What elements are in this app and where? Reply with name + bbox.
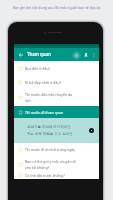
button[interactable]: Back [17,51,25,59]
staticText: 관광지를 추천해 주시겠어요 [27,124,71,129]
staticText: cho tôi không? [25,165,50,170]
staticText: Tôi muốn đi tham quan [25,110,64,115]
button[interactable]: Record [89,128,94,133]
staticText: Bạn ghi âm nội dung sau đó một người bạn… [6,5,107,10]
button[interactable]: Đi bộ đẹp nhất ở đâu? [14,76,99,89]
button[interactable]: Bạn có thể gợi ý một chuyến đi [14,156,99,172]
button[interactable]: Tôi muốn đặt một chuyến du [14,89,99,106]
staticText: Tôi muốn đặt một chuyến du [25,92,73,97]
staticText: Đi bộ đẹp nhất ở đâu? [25,80,62,85]
button[interactable]: Tôi muốn đi tham quan [14,106,99,118]
staticText: Bus đến ở đâu? [25,66,51,71]
staticText: Tôi muốn đi du lịch trong ngày [25,147,76,152]
staticText: 저는 하루 여행을 가고 싶어요 [27,131,73,136]
button[interactable]: Translate [71,50,81,60]
button[interactable]: More options [90,51,97,58]
button[interactable]: Bus đến ở đâu? [14,61,99,76]
staticText: Có thể đặt trước không? [25,173,65,178]
button[interactable]: Có thể đặt trước không? [14,172,99,179]
button[interactable]: Tôi muốn đi du lịch trong ngày [14,143,99,156]
staticText: lịch. [25,98,32,103]
staticText: Tham quan [27,51,51,57]
staticText: Bạn có thể gợi ý một chuyến đi [25,159,76,164]
button[interactable]: Account [82,51,90,59]
